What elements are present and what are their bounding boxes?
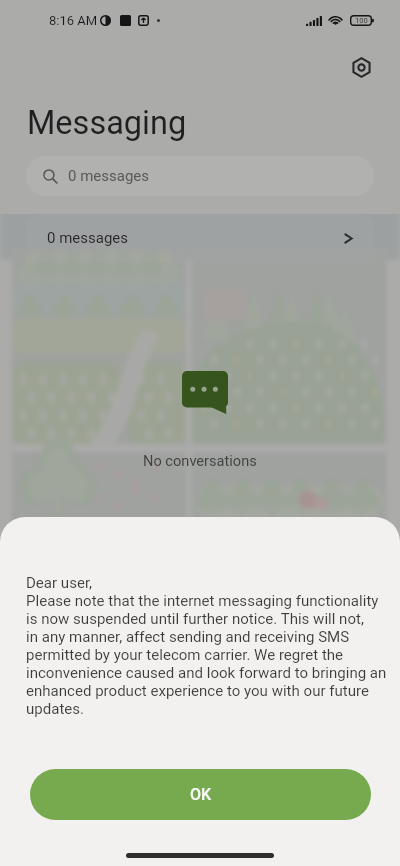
staticText: No conversations xyxy=(143,452,257,469)
staticText: 0 messages xyxy=(47,229,129,247)
staticText: Messaging xyxy=(27,104,187,142)
staticText: Dear user, Please note that the internet… xyxy=(26,574,387,718)
staticText: 0 messages xyxy=(68,167,150,185)
button[interactable]: 0 messages xyxy=(26,156,374,196)
button[interactable]: Settings xyxy=(344,50,378,84)
button[interactable]: OK xyxy=(30,769,371,820)
button[interactable]: 0 messages xyxy=(26,214,374,262)
staticText: 8:16 AM xyxy=(49,13,98,28)
staticText: OK xyxy=(190,785,212,804)
staticText: 100 xyxy=(355,16,368,25)
